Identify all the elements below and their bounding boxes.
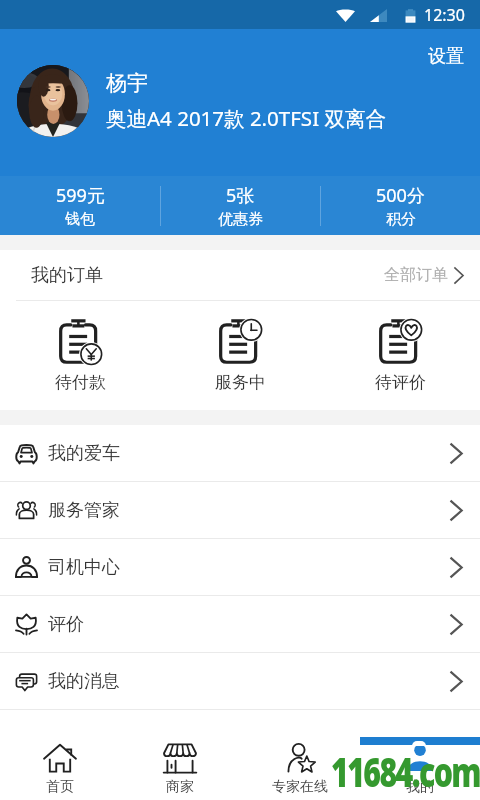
- button[interactable]: 500分: [321, 176, 480, 235]
- button[interactable]: 5张: [161, 176, 320, 235]
- staticText: 待付款: [55, 372, 106, 393]
- staticText: 奥迪A4 2017款 2.0TFSI 双离合: [106, 104, 386, 132]
- button[interactable]: 商家: [120, 710, 240, 800]
- staticText: 首页: [46, 778, 74, 796]
- staticText: 专家在线: [272, 778, 328, 796]
- button[interactable]: 服务管家: [0, 482, 480, 538]
- staticText: 500分: [376, 183, 425, 208]
- staticText: 全部订单: [384, 265, 448, 285]
- button[interactable]: 599元: [0, 176, 160, 235]
- staticText: 599元: [56, 183, 105, 208]
- staticText: 积分: [386, 210, 416, 229]
- staticText: 我的: [406, 778, 434, 796]
- staticText: 司机中心: [48, 556, 120, 579]
- button[interactable]: 评价: [0, 596, 480, 652]
- button[interactable]: 我的: [360, 710, 480, 800]
- staticText: 服务中: [215, 372, 266, 393]
- staticText: 设置: [428, 45, 464, 68]
- button[interactable]: 专家在线: [240, 710, 360, 800]
- button[interactable]: 待付款: [0, 301, 160, 410]
- button[interactable]: 司机中心: [0, 539, 480, 595]
- staticText: 优惠券: [218, 210, 263, 229]
- staticText: 我的爱车: [48, 442, 120, 465]
- button[interactable]: 待评价: [320, 301, 480, 410]
- staticText: 5张: [226, 183, 255, 208]
- staticText: 11684.com: [331, 744, 480, 798]
- button[interactable]: 我的爱车: [0, 425, 480, 481]
- staticText: 我的订单: [31, 264, 103, 287]
- button[interactable]: 我的订单: [0, 250, 480, 300]
- staticText: 钱包: [65, 210, 95, 229]
- staticText: 12:30: [424, 4, 465, 26]
- staticText: 杨宇: [106, 70, 148, 96]
- button[interactable]: 服务中: [160, 301, 320, 410]
- staticText: 我的消息: [48, 670, 120, 693]
- button[interactable]: 我的消息: [0, 653, 480, 709]
- button[interactable]: 首页: [0, 710, 120, 800]
- staticText: 待评价: [375, 372, 426, 393]
- staticText: 服务管家: [48, 499, 120, 522]
- button[interactable]: 设置: [412, 29, 480, 78]
- staticText: 商家: [166, 778, 194, 796]
- staticText: 评价: [48, 613, 84, 636]
